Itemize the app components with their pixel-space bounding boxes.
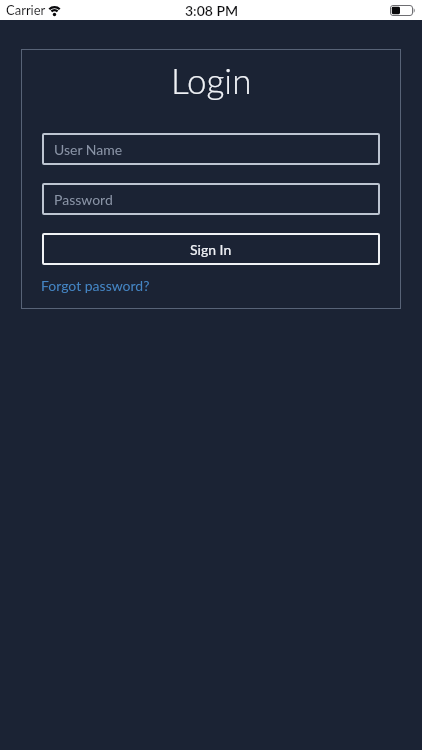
staticText: User Name	[54, 141, 123, 158]
staticText: Sign In	[190, 241, 232, 258]
staticText: Forgot password?	[41, 277, 150, 294]
button[interactable]: Sign In	[42, 233, 380, 265]
button[interactable]: User Name	[42, 133, 380, 165]
button[interactable]: Forgot password?	[41, 277, 150, 294]
staticText: Carrier	[6, 2, 46, 18]
staticText: Login	[171, 59, 252, 101]
staticText: Password	[54, 191, 113, 208]
staticText: 3:08 PM	[185, 2, 239, 19]
button[interactable]: Password	[42, 183, 380, 215]
